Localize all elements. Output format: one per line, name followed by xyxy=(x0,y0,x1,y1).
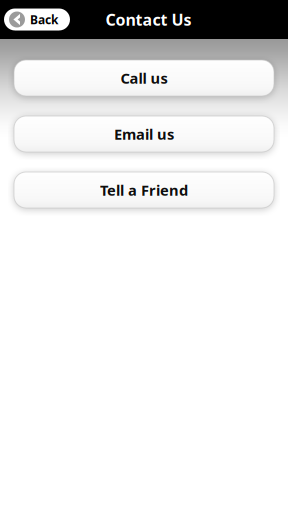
button[interactable]: Back xyxy=(4,8,70,30)
button[interactable]: Tell a Friend xyxy=(14,172,274,208)
staticText: Email us xyxy=(114,124,174,144)
button[interactable]: Email us xyxy=(14,116,274,152)
button[interactable]: Call us xyxy=(14,60,274,96)
staticText: Contact Us xyxy=(105,9,191,30)
staticText: Back xyxy=(30,11,58,27)
staticText: Call us xyxy=(120,68,167,88)
staticText: Tell a Friend xyxy=(100,180,188,200)
